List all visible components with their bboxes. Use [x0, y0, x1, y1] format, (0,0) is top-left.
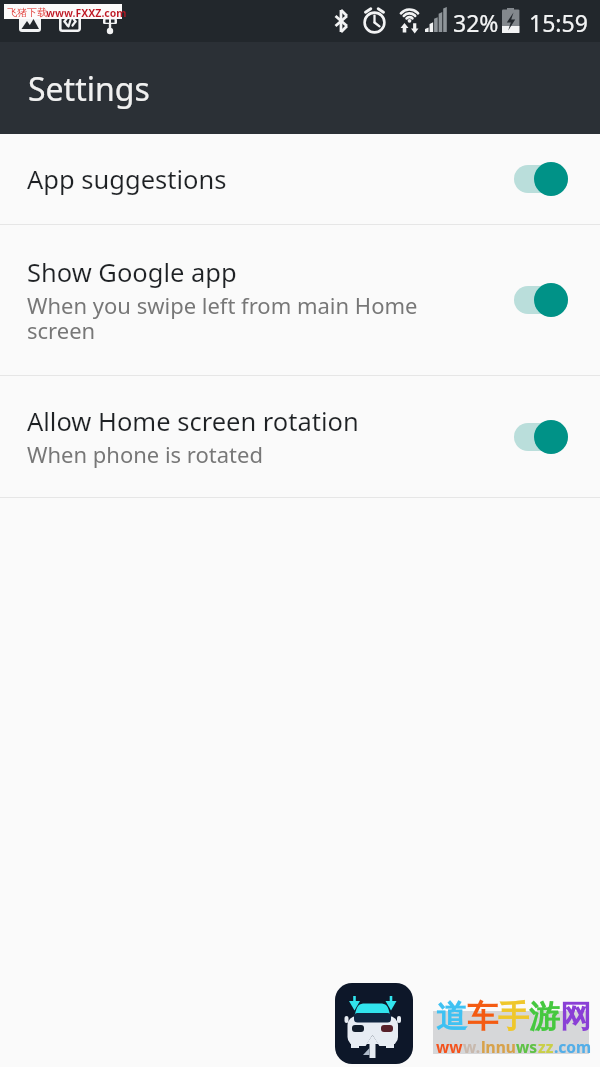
staticText: Allow Home screen rotation	[27, 404, 359, 439]
staticText: ww	[436, 1036, 463, 1057]
staticText: When you swipe left from main Home scree…	[27, 290, 475, 346]
button[interactable]: Show Google app	[0, 225, 600, 375]
staticText: 道	[436, 997, 467, 1036]
staticText: ws	[516, 1036, 538, 1057]
button[interactable]: Toggle setting	[514, 161, 568, 197]
staticText: Settings	[28, 67, 150, 111]
staticText: 网	[560, 997, 591, 1036]
staticText: 15:59	[529, 7, 588, 38]
button[interactable]: Toggle setting	[514, 282, 568, 318]
staticText: 手	[498, 997, 529, 1036]
button[interactable]: App suggestions	[0, 134, 600, 224]
staticText: 飞猪下载	[7, 6, 47, 19]
staticText: lnnu	[481, 1036, 516, 1057]
staticText: Show Google app	[27, 255, 237, 290]
staticText: zz	[538, 1036, 554, 1057]
staticText: 游	[529, 997, 560, 1036]
staticText: App suggestions	[27, 162, 227, 197]
button[interactable]: Toggle setting	[514, 419, 568, 455]
staticText: w.	[463, 1036, 481, 1057]
staticText: www.FXXZ.com	[46, 6, 127, 20]
staticText: When phone is rotated	[27, 439, 263, 469]
staticText: .com	[554, 1036, 592, 1057]
button[interactable]: Allow Home screen rotation	[0, 376, 600, 497]
staticText: 车	[467, 997, 498, 1036]
staticText: 32%	[453, 7, 499, 38]
